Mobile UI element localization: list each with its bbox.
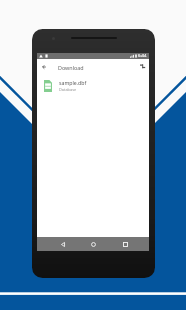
staticText: 6:44 (138, 53, 147, 59)
button[interactable]: Sort (136, 60, 149, 73)
button[interactable]: Back (37, 60, 50, 73)
button[interactable]: Recents (117, 237, 133, 251)
button[interactable]: sample.dbf (37, 78, 149, 93)
staticText: Download (58, 64, 84, 71)
button[interactable]: Back (55, 237, 71, 251)
staticText: sample.dbf (59, 79, 87, 86)
button[interactable]: Home (85, 237, 101, 251)
staticText: Database (59, 87, 77, 92)
